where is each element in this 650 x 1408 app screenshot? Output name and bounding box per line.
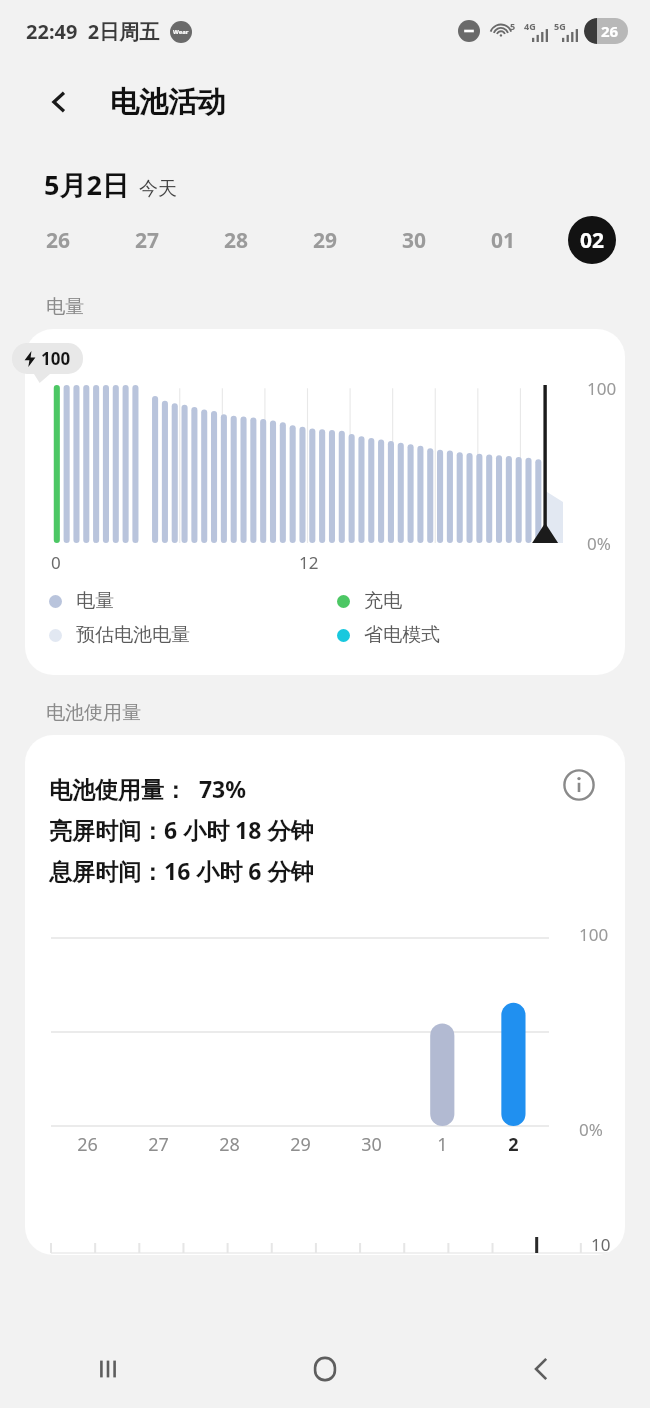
staticText: 12 [299, 551, 319, 574]
button[interactable]: Home [216, 1330, 433, 1408]
staticText: 26 [77, 1132, 98, 1157]
button[interactable]: Back [433, 1330, 650, 1408]
button[interactable]: Back [36, 78, 84, 126]
staticText: 0% [579, 1118, 603, 1141]
button[interactable]: 26 [34, 216, 82, 264]
staticText: 亮屏时间：6 小时 18 分钟 [49, 814, 314, 845]
button[interactable]: 29 [301, 216, 349, 264]
staticText: 30 [402, 226, 427, 255]
staticText: 26 [46, 226, 71, 255]
button[interactable]: Recents [0, 1330, 216, 1408]
button[interactable]: 电池使用量： 73% [25, 735, 625, 1255]
staticText: 今天 [139, 177, 177, 201]
staticText: 100 [579, 923, 609, 946]
staticText: 27 [148, 1132, 169, 1157]
staticText: 02 [580, 226, 605, 255]
staticText: 28 [224, 226, 249, 255]
staticText: 预估电池电量 [76, 623, 190, 647]
staticText: 10 [591, 1233, 611, 1255]
staticText: Wear [173, 28, 189, 36]
button[interactable]: 28 [212, 216, 260, 264]
staticText: 电量 [46, 295, 84, 319]
button[interactable]: 02 [568, 216, 616, 264]
staticText: 电池活动 [110, 84, 226, 121]
button[interactable]: Info [555, 761, 603, 809]
staticText: 4G [524, 20, 536, 32]
button[interactable]: 100 [25, 329, 625, 675]
staticText: 电池使用量： 73% [49, 773, 247, 804]
staticText: 0 [51, 551, 61, 574]
staticText: 26 [601, 21, 619, 41]
staticText: 5 [510, 20, 516, 32]
staticText: 27 [135, 226, 160, 255]
staticText: 电量 [76, 589, 114, 613]
staticText: 5月2日 [44, 166, 129, 203]
staticText: 充电 [364, 589, 402, 613]
staticText: 30 [361, 1132, 382, 1157]
staticText: 29 [313, 226, 338, 255]
button[interactable]: 27 [123, 216, 171, 264]
staticText: 电池使用量 [46, 701, 141, 725]
staticText: 100 [587, 377, 617, 400]
staticText: 29 [290, 1132, 311, 1157]
staticText: 1 [437, 1132, 448, 1157]
staticText: 5G [554, 20, 566, 32]
button[interactable]: 01 [479, 216, 527, 264]
staticText: 省电模式 [364, 623, 440, 647]
staticText: 100 [41, 347, 71, 370]
staticText: 息屏时间：16 小时 6 分钟 [49, 855, 314, 886]
staticText: 28 [219, 1132, 240, 1157]
staticText: 01 [491, 226, 516, 255]
button[interactable]: 30 [390, 216, 438, 264]
staticText: 22:49 2日周五 [26, 18, 160, 45]
staticText: 0% [587, 532, 611, 555]
staticText: 2 [508, 1132, 519, 1157]
